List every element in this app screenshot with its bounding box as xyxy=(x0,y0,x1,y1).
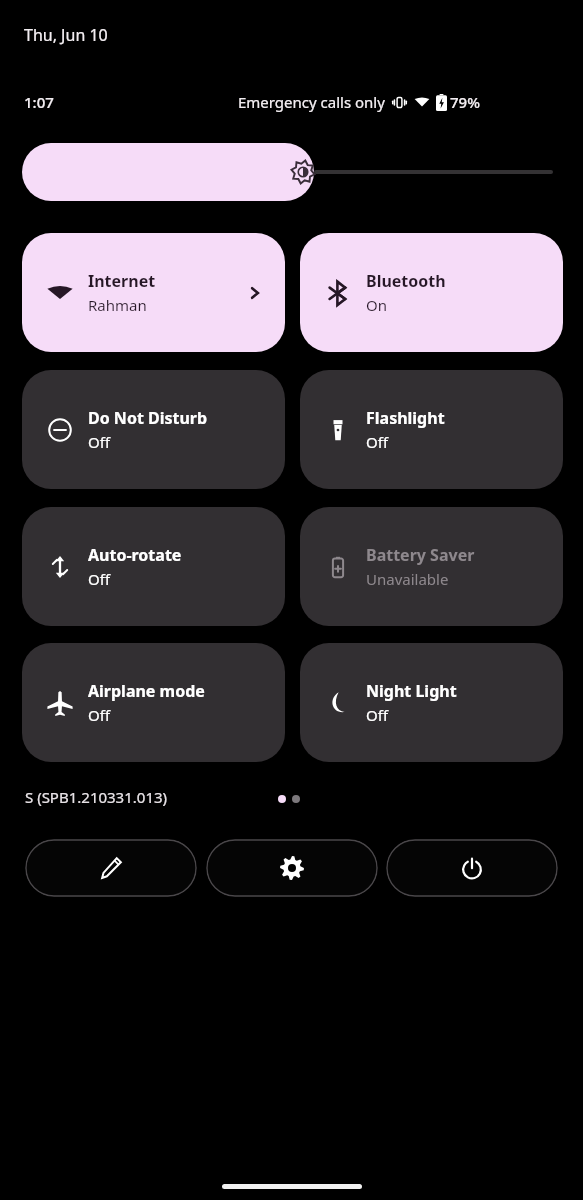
staticText: Airplane mode xyxy=(88,680,205,702)
staticText: Do Not Disturb xyxy=(88,407,208,429)
button[interactable]: Auto-rotate xyxy=(22,507,285,626)
button[interactable]: Do Not Disturb xyxy=(22,370,285,489)
staticText: Off xyxy=(366,705,389,725)
staticText: Auto-rotate xyxy=(88,544,182,566)
staticText: Off xyxy=(366,432,389,452)
button[interactable]: Power xyxy=(386,839,558,897)
staticText: Off xyxy=(88,705,111,725)
staticText: Flashlight xyxy=(366,407,445,429)
button[interactable]: Internet xyxy=(22,233,285,352)
staticText: S (SPB1.210331.013) xyxy=(25,787,168,807)
button[interactable]: Settings xyxy=(206,839,378,897)
button[interactable]: Edit tiles xyxy=(25,839,197,897)
button[interactable]: Night Light xyxy=(300,643,563,762)
staticText: Off xyxy=(88,432,111,452)
staticText: Emergency calls only xyxy=(238,92,385,112)
staticText: Rahman xyxy=(88,295,147,315)
button[interactable]: Battery Saver xyxy=(300,507,563,626)
button[interactable] xyxy=(22,143,561,201)
staticText: 1:07 xyxy=(24,92,54,112)
button[interactable]: Flashlight xyxy=(300,370,563,489)
staticText: 79% xyxy=(450,92,480,112)
staticText: Bluetooth xyxy=(366,270,446,292)
staticText: On xyxy=(366,295,387,315)
staticText: Internet xyxy=(88,270,156,292)
button[interactable]: Airplane mode xyxy=(22,643,285,762)
staticText: Night Light xyxy=(366,680,457,702)
button[interactable]: Bluetooth xyxy=(300,233,563,352)
staticText: Battery Saver xyxy=(366,544,475,566)
staticText: Off xyxy=(88,569,111,589)
staticText: Thu, Jun 10 xyxy=(24,24,108,46)
staticText: Unavailable xyxy=(366,569,449,589)
